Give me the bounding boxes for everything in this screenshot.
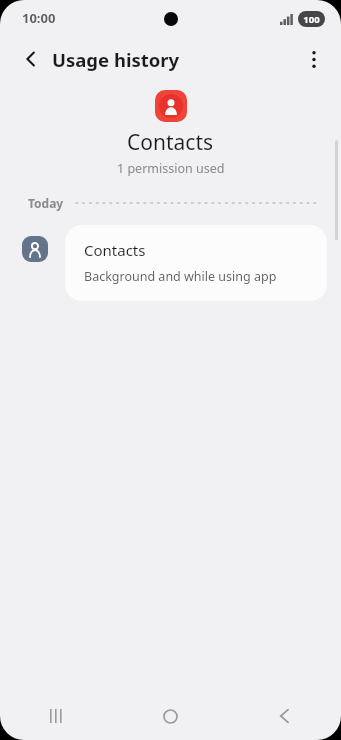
staticText: Contacts <box>127 128 214 157</box>
button[interactable]: Home <box>113 692 227 740</box>
staticText: Usage history <box>52 47 180 72</box>
button[interactable]: Contacts <box>65 225 327 301</box>
button[interactable]: Recent apps <box>0 692 113 740</box>
staticText: 100 <box>303 13 320 26</box>
button[interactable]: More options <box>297 42 331 76</box>
staticText: 10:00 <box>22 9 56 27</box>
staticText: 1 permission used <box>117 160 225 177</box>
staticText: Background and while using app <box>84 268 277 285</box>
staticText: Contacts <box>84 240 146 260</box>
staticText: Today <box>28 195 64 211</box>
button[interactable]: Back <box>14 42 48 76</box>
button[interactable]: Back <box>227 692 341 740</box>
